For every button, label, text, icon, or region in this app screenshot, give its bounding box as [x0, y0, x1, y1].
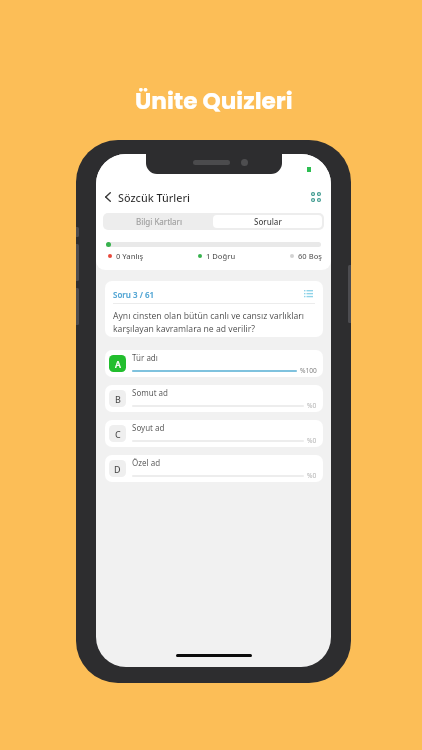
- staticText: C: [115, 428, 121, 440]
- staticText: A: [115, 358, 121, 370]
- staticText: Aynı cinsten olan bütün canlı ve cansız …: [113, 310, 315, 335]
- staticText: %100: [300, 366, 317, 375]
- button[interactable]: Question list: [301, 288, 315, 299]
- staticText: 0 Yanlış: [116, 251, 144, 261]
- staticText: Sözcük Türleri: [118, 190, 190, 205]
- button[interactable]: Grid view: [308, 189, 324, 205]
- staticText: Sorular: [254, 216, 282, 227]
- button[interactable]: A: [105, 350, 323, 377]
- button[interactable]: C: [105, 420, 323, 447]
- staticText: Ünite Quizleri: [135, 85, 293, 117]
- staticText: 1 Doğru: [206, 251, 236, 261]
- staticText: 60 Boş: [298, 251, 322, 261]
- staticText: Bilgi Kartları: [136, 216, 182, 227]
- staticText: %0: [307, 436, 317, 445]
- staticText: Somut ad: [132, 387, 169, 398]
- button[interactable]: Bilgi Kartları: [105, 215, 213, 228]
- staticText: Tür adı: [132, 352, 158, 363]
- staticText: B: [115, 393, 121, 405]
- button[interactable]: D: [105, 455, 323, 482]
- button[interactable]: Sorular: [213, 215, 322, 228]
- staticText: D: [114, 463, 121, 475]
- staticText: Soyut ad: [132, 422, 165, 433]
- staticText: %0: [307, 471, 317, 480]
- staticText: Özel ad: [132, 457, 161, 468]
- button[interactable]: B: [105, 385, 323, 412]
- staticText: Soru 3 / 61: [113, 289, 155, 300]
- staticText: %0: [307, 401, 317, 410]
- button[interactable]: Back: [101, 189, 115, 205]
